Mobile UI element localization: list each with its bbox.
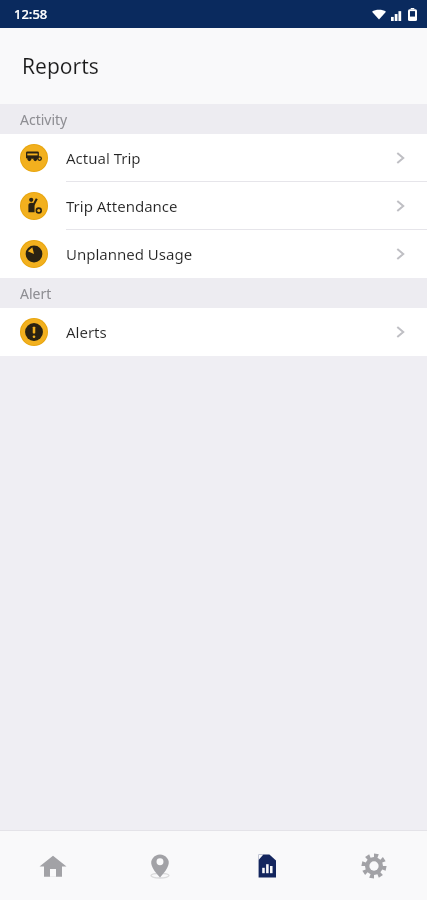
- staticText: Actual Trip: [66, 148, 141, 168]
- button[interactable]: Map: [106, 831, 213, 900]
- button[interactable]: Reports: [213, 831, 320, 900]
- staticText: 12:58: [14, 5, 48, 23]
- staticText: Trip Attendance: [66, 196, 178, 216]
- staticText: Activity: [20, 110, 68, 129]
- button[interactable]: Actual Trip: [0, 134, 427, 182]
- staticText: Alerts: [66, 322, 107, 342]
- button[interactable]: Unplanned Usage: [0, 230, 427, 278]
- staticText: Unplanned Usage: [66, 244, 193, 264]
- button[interactable]: Settings: [320, 831, 427, 900]
- button[interactable]: Alerts: [0, 308, 427, 356]
- button[interactable]: Home: [0, 831, 106, 900]
- staticText: Reports: [22, 52, 99, 81]
- staticText: Alert: [20, 284, 52, 303]
- button[interactable]: Trip Attendance: [0, 182, 427, 230]
